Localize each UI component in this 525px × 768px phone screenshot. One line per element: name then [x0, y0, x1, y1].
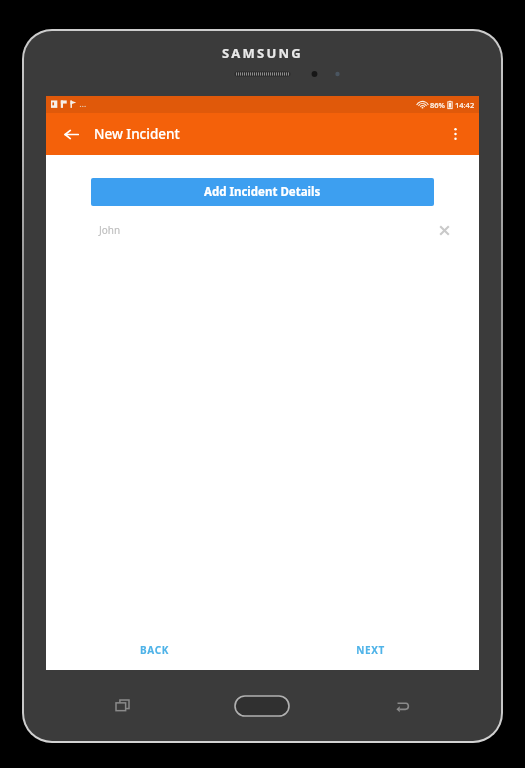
- staticText: 14:42: [455, 100, 475, 110]
- staticText: 86%: [430, 100, 445, 110]
- button[interactable]: BACK: [46, 633, 262, 667]
- staticText: NEXT: [356, 643, 385, 657]
- button[interactable]: Home: [234, 695, 290, 717]
- staticText: BACK: [140, 643, 169, 657]
- button[interactable]: More options: [437, 116, 473, 152]
- button[interactable]: Recent apps: [107, 691, 137, 721]
- button[interactable]: NEXT: [262, 633, 479, 667]
- staticText: Add Incident Details: [204, 184, 321, 200]
- button[interactable]: Navigate up: [55, 118, 87, 150]
- button[interactable]: John: [46, 217, 479, 243]
- button[interactable]: Back: [387, 691, 417, 721]
- staticText: New Incident: [94, 125, 180, 143]
- button[interactable]: Remove John: [431, 217, 457, 243]
- button[interactable]: Add Incident Details: [91, 178, 434, 206]
- staticText: SAMSUNG: [222, 44, 303, 62]
- staticText: John: [99, 223, 121, 237]
